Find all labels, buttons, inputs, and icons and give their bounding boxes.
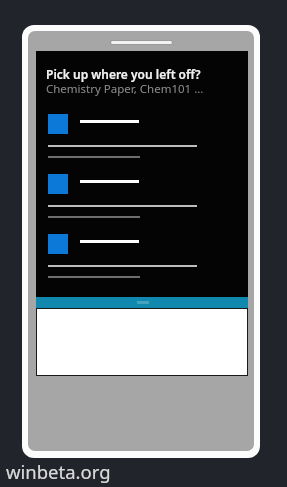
button[interactable]: Recent document 3 [48,234,234,289]
button[interactable]: Recent document 1 [48,114,234,169]
button[interactable]: Recent document 2 [48,174,234,229]
staticText: Chemistry Paper, Chem101 … [46,81,204,97]
staticText: winbeta.org [6,459,111,484]
button[interactable]: Search the web and Windows [36,297,248,308]
staticText: Pick up where you left off? [46,66,201,82]
